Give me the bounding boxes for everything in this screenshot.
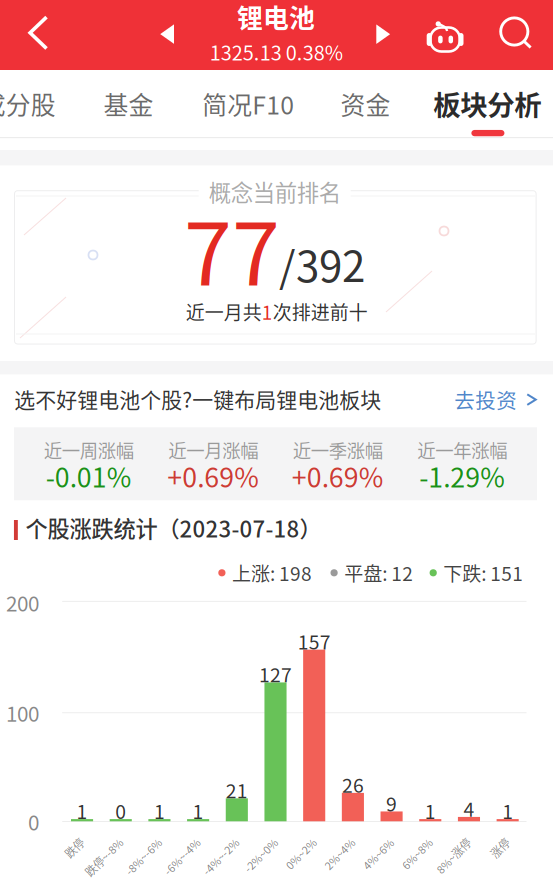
staticText: -2%~0%	[240, 847, 282, 863]
staticText: 跌停~-8%	[80, 849, 128, 865]
staticText: 0	[115, 797, 126, 825]
staticText: 1	[76, 797, 87, 825]
button[interactable]: 资金	[332, 75, 398, 132]
staticText: 4	[463, 794, 474, 822]
staticText: 简况F10	[202, 86, 294, 121]
button[interactable]: Back	[19, 6, 57, 59]
staticText: 近一月共	[186, 298, 262, 325]
button[interactable]: Next sector	[367, 15, 399, 53]
staticText: 板块分析	[433, 84, 541, 123]
staticText: 1	[154, 797, 165, 825]
staticText: 近一月涨幅	[168, 436, 258, 463]
staticText: 9	[386, 789, 397, 817]
staticText: -1.29%	[419, 456, 505, 495]
staticText: 1	[425, 797, 436, 825]
staticText: 157	[298, 627, 331, 655]
button[interactable]: 成分股	[0, 75, 64, 132]
staticText: 概念当前排名	[209, 175, 341, 208]
staticText: /392	[279, 233, 365, 294]
staticText: -0.01%	[46, 456, 132, 495]
button[interactable]: 基金	[96, 75, 162, 132]
staticText: 近一年涨幅	[417, 436, 507, 463]
button[interactable]: 简况F10	[194, 75, 302, 132]
staticText: 成分股	[0, 86, 56, 121]
staticText: +0.69%	[167, 456, 259, 495]
staticText: 26	[342, 770, 364, 798]
staticText: 近一季涨幅	[293, 436, 383, 463]
staticText: 0%~2%	[282, 846, 320, 862]
button[interactable]: 去投资	[450, 376, 541, 423]
staticText: -6%~-4%	[159, 849, 205, 864]
staticText: 选不好锂电池个股?一键布局锂电池板块	[14, 383, 381, 414]
staticText: 0	[28, 806, 39, 836]
staticText: -8%~-6%	[120, 849, 166, 864]
staticText: 4%~6%	[359, 846, 397, 862]
staticText: 1	[262, 298, 273, 325]
staticText: +0.69%	[292, 456, 384, 495]
staticText: 200	[6, 588, 39, 617]
staticText: 次排进前十	[273, 298, 368, 325]
staticText: -4%~-2%	[198, 849, 244, 864]
staticText: 平盘: 12	[344, 559, 413, 587]
staticText: 资金	[340, 86, 390, 121]
staticText: 6%~8%	[398, 846, 436, 862]
button[interactable]: 板块分析	[425, 73, 549, 134]
staticText: 1	[193, 797, 204, 825]
staticText: 1	[502, 797, 513, 825]
button[interactable]: Search	[492, 9, 539, 56]
staticText: 8%~涨停	[432, 848, 476, 864]
staticText: 127	[259, 660, 292, 688]
staticText: 100	[6, 698, 39, 728]
staticText: 基金	[104, 86, 154, 121]
staticText: 个股涨跌统计（2023-07-18）	[25, 512, 321, 544]
staticText: 1325.13 0.38%	[210, 37, 343, 66]
staticText: 跌停	[64, 840, 86, 856]
button[interactable]: Previous sector	[151, 15, 183, 53]
staticText: 下跌: 151	[443, 559, 523, 587]
staticText: 77	[184, 185, 280, 310]
button[interactable]: AI assistant	[420, 13, 471, 59]
staticText: 21	[226, 776, 248, 804]
staticText: 去投资	[454, 385, 517, 414]
staticText: 涨停	[489, 840, 511, 856]
staticText: 上涨: 198	[232, 559, 312, 587]
staticText: 锂电池	[237, 0, 315, 35]
staticText: 2%~4%	[320, 846, 358, 862]
staticText: 近一周涨幅	[44, 436, 134, 463]
